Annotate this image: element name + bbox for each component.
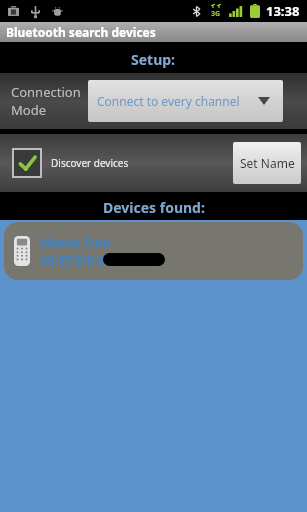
staticText: Connection — [11, 83, 81, 101]
staticText: Bluetooth search devices — [6, 24, 156, 40]
other: Phone — [14, 236, 30, 266]
staticText: Set Name — [240, 155, 295, 171]
staticText: 13:38 — [266, 2, 300, 20]
staticText: Mode — [11, 101, 46, 119]
staticText: Devices found: — [103, 198, 205, 217]
button[interactable]: Phone — [4, 222, 303, 280]
staticText: Connect to every channel — [97, 93, 240, 109]
staticText: 38:E7:D8:00:00:00 — [40, 251, 150, 269]
staticText: Discover devices — [51, 156, 129, 170]
staticText: Setup: — [131, 50, 176, 69]
button[interactable]: Connect to every channel — [88, 80, 283, 122]
staticText: Nexus One — [40, 233, 111, 251]
staticText: 3G — [211, 9, 221, 19]
button[interactable]: Set Name — [233, 142, 301, 184]
button[interactable]: Discover devices — [12, 148, 129, 178]
